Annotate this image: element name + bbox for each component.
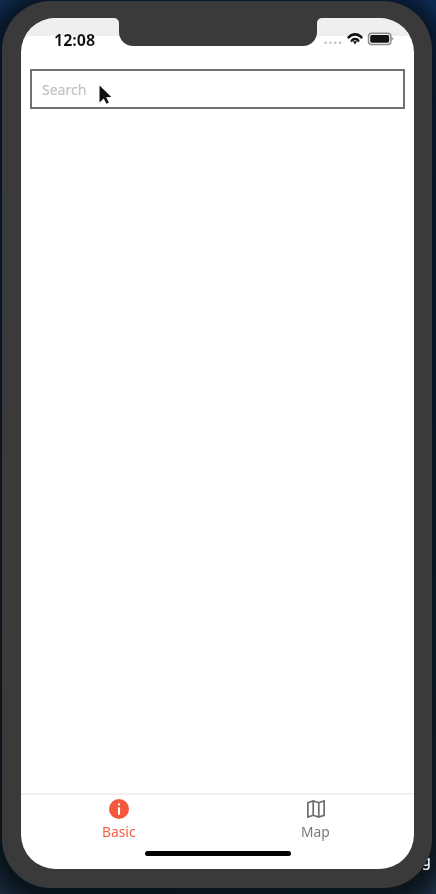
other: Map (307, 800, 325, 818)
button[interactable]: Search (31, 70, 404, 108)
button[interactable]: Map (217, 795, 414, 841)
staticText: Map (301, 822, 330, 841)
staticText: Basic (102, 822, 136, 841)
other: Basic (109, 799, 129, 819)
staticText: Search (42, 80, 87, 99)
staticText: 12:08 (54, 29, 96, 51)
staticText: g (422, 851, 431, 870)
button[interactable]: Basic (21, 795, 217, 841)
